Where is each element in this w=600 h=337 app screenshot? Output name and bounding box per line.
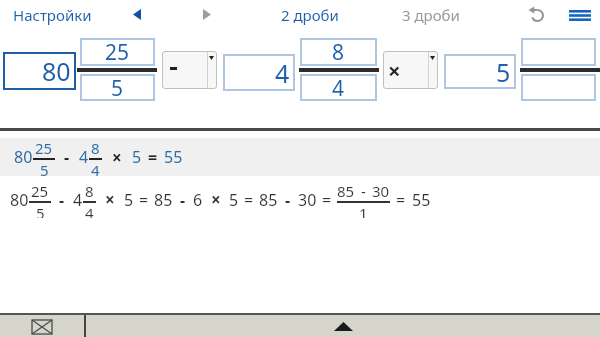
staticText: 55 <box>164 146 183 168</box>
button[interactable]: Настройки <box>6 0 98 30</box>
staticText: 8 <box>332 38 345 66</box>
staticText: 30 <box>298 189 317 211</box>
button[interactable] <box>0 315 84 337</box>
staticText: 4 <box>79 146 89 168</box>
staticText: × <box>112 146 122 169</box>
staticText: 1 <box>359 203 368 218</box>
staticText: 5 <box>40 160 49 176</box>
button[interactable]: 4 <box>300 74 377 101</box>
button[interactable] <box>521 38 596 66</box>
button[interactable] <box>521 74 596 101</box>
button[interactable] <box>527 5 547 25</box>
button[interactable]: 80 <box>10 181 600 218</box>
staticText: 80 <box>42 54 71 88</box>
staticText: 85 <box>259 189 278 211</box>
button[interactable]: 4 <box>223 54 295 91</box>
staticText: 25 <box>31 181 49 201</box>
staticText: 80 <box>10 189 29 211</box>
staticText: - <box>285 189 291 211</box>
button[interactable]: 80 <box>14 138 600 176</box>
staticText: 25 <box>35 138 53 158</box>
button[interactable]: 3 дроби <box>386 0 476 30</box>
staticText: = <box>148 146 158 168</box>
staticText: 5 <box>229 189 239 211</box>
staticText: = <box>322 189 332 211</box>
staticText: 4 <box>332 74 345 101</box>
staticText: = <box>139 189 149 211</box>
staticText: 55 <box>412 189 431 211</box>
staticText: 6 <box>193 189 203 211</box>
staticText: × <box>388 55 401 85</box>
staticText: 2 дроби <box>281 5 339 25</box>
staticText: = <box>396 189 406 211</box>
staticText: 80 <box>14 146 33 168</box>
button[interactable] <box>559 0 600 30</box>
staticText: 5 <box>36 203 45 218</box>
staticText: × <box>105 188 115 211</box>
staticText: 5 <box>111 74 124 101</box>
staticText: 85 <box>337 181 355 201</box>
staticText: × <box>211 188 221 211</box>
button[interactable]: 25 <box>80 38 155 66</box>
staticText: 4 <box>85 203 94 218</box>
staticText: 4 <box>91 160 100 176</box>
staticText: - <box>59 189 65 211</box>
staticText: 4 <box>275 56 290 90</box>
button[interactable] <box>122 0 152 29</box>
staticText: Настройки <box>13 5 92 25</box>
staticText: 8 <box>85 181 94 201</box>
staticText: 8 <box>91 138 100 158</box>
staticText: 3 дроби <box>402 5 460 25</box>
staticText: 5 <box>496 55 511 89</box>
staticText: - <box>180 189 186 211</box>
staticText: 85 <box>154 189 173 211</box>
button[interactable] <box>162 51 217 89</box>
staticText: - <box>64 146 70 168</box>
button[interactable]: 8 <box>300 38 377 66</box>
staticText: = <box>244 189 254 211</box>
staticText: 5 <box>124 189 134 211</box>
button[interactable]: 5 <box>80 74 155 101</box>
staticText: 30 <box>372 181 390 201</box>
staticText: 5 <box>132 146 142 168</box>
button[interactable] <box>300 315 386 337</box>
staticText: 4 <box>73 189 83 211</box>
button[interactable]: 2 дроби <box>262 0 358 30</box>
button[interactable]: 5 <box>444 54 516 89</box>
button[interactable] <box>192 0 222 29</box>
button[interactable]: × <box>383 51 438 89</box>
staticText: 25 <box>105 38 130 66</box>
staticText: - <box>361 181 366 201</box>
button[interactable]: 80 <box>3 52 76 90</box>
